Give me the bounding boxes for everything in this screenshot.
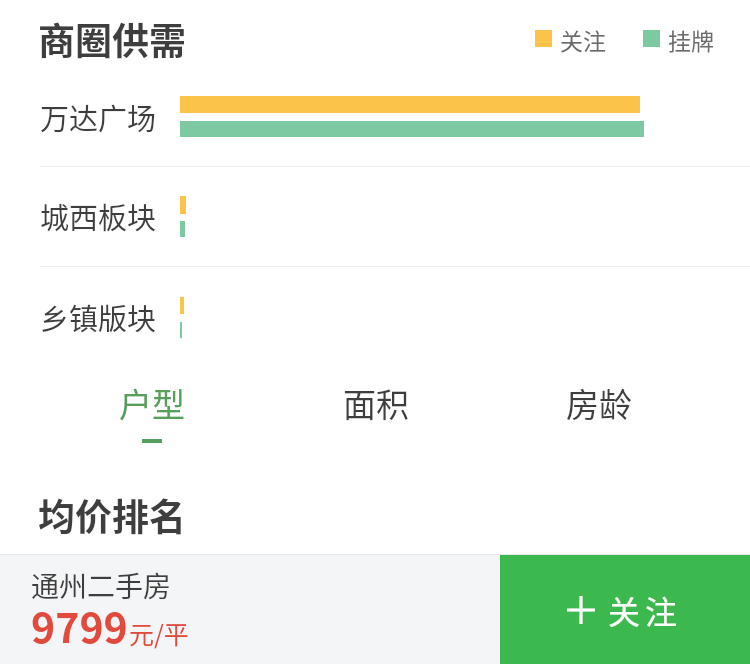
staticText: 9799 <box>31 595 128 654</box>
staticText: 户型 <box>119 379 185 427</box>
button[interactable]: 关注 <box>500 555 750 664</box>
staticText: 房龄 <box>566 379 632 427</box>
staticText: 万达广场 <box>40 96 157 138</box>
staticText: 乡镇版块 <box>40 296 157 338</box>
staticText: 元/平 <box>129 615 189 651</box>
staticText: 挂牌 <box>668 23 714 56</box>
staticText: 面积 <box>343 379 409 427</box>
staticText: 关注 <box>608 587 683 633</box>
staticText: 关注 <box>560 23 606 56</box>
staticText: 通州二手房 <box>31 565 172 606</box>
button[interactable]: 面积 <box>264 379 487 443</box>
staticText: 均价排名 <box>38 488 186 542</box>
button[interactable]: 房龄 <box>487 379 710 443</box>
staticText: 城西板块 <box>40 195 157 237</box>
button[interactable]: 户型 <box>40 379 264 443</box>
staticText: 商圈供需 <box>38 12 186 66</box>
